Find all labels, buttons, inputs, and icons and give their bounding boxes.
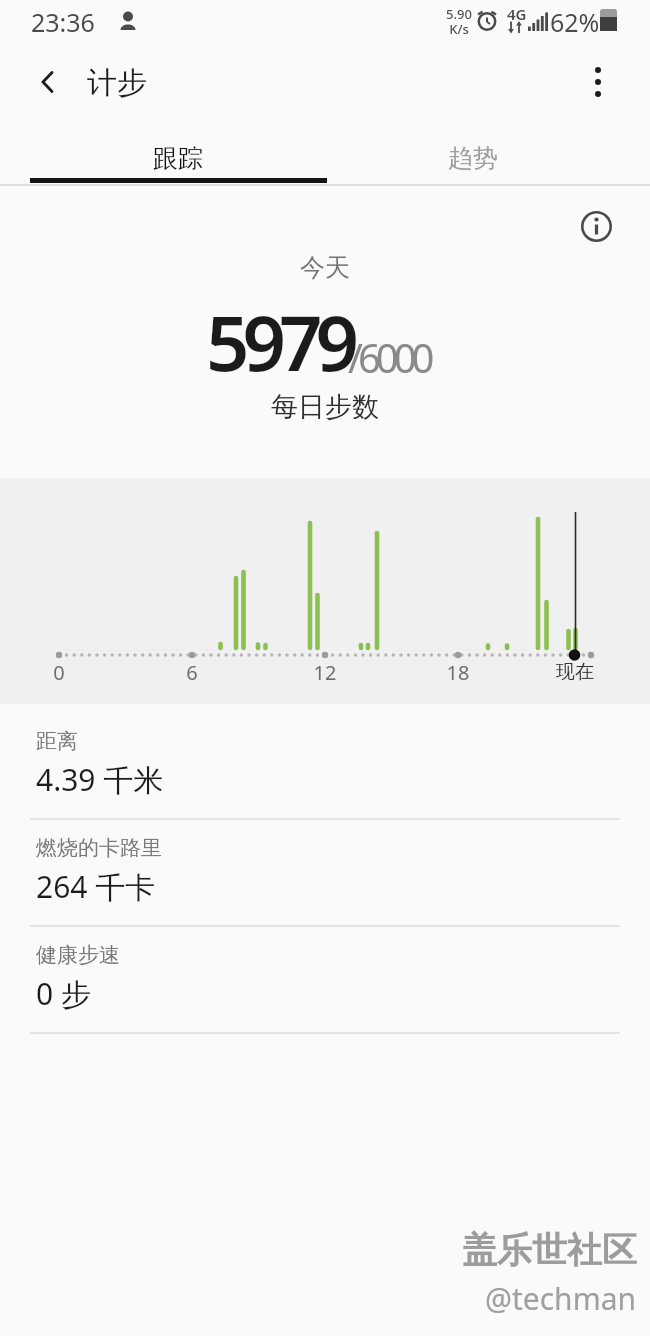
staticText: 264 千卡 bbox=[36, 866, 156, 907]
staticText: 0 bbox=[39, 659, 79, 686]
button[interactable]: 计步 bbox=[87, 64, 147, 102]
button[interactable]: 健康步速 bbox=[0, 926, 650, 1033]
staticText: 健康步速 bbox=[36, 942, 120, 968]
staticText: @techman bbox=[485, 1278, 637, 1319]
staticText: 距离 bbox=[36, 728, 78, 754]
staticText: 4G bbox=[507, 4, 527, 24]
staticText: 4.39 千米 bbox=[36, 759, 164, 800]
button[interactable] bbox=[24, 58, 72, 106]
staticText: 趋势 bbox=[448, 143, 498, 174]
button[interactable] bbox=[574, 58, 622, 106]
staticText: 12 bbox=[305, 659, 345, 686]
staticText: 5979 bbox=[206, 290, 352, 394]
button[interactable]: 跟踪 bbox=[30, 130, 325, 186]
staticText: 23:36 bbox=[31, 5, 95, 39]
staticText: 盖乐世社区 bbox=[462, 1228, 637, 1272]
staticText: 现在 bbox=[545, 660, 605, 684]
staticText: 5.90 K/s bbox=[438, 5, 480, 38]
button[interactable] bbox=[578, 208, 614, 244]
staticText: 跟踪 bbox=[153, 143, 203, 174]
staticText: 18 bbox=[438, 659, 478, 686]
button[interactable]: 趋势 bbox=[325, 130, 620, 186]
staticText: 6 bbox=[172, 659, 212, 686]
staticText: 今天 bbox=[0, 252, 650, 283]
staticText: 每日步数 bbox=[0, 390, 650, 424]
button[interactable]: 燃烧的卡路里 bbox=[0, 819, 650, 926]
staticText: 燃烧的卡路里 bbox=[36, 835, 162, 861]
staticText: 62% bbox=[550, 5, 600, 39]
staticText: /6000 bbox=[348, 330, 430, 384]
button[interactable]: 距离 bbox=[0, 712, 650, 819]
staticText: 0 步 bbox=[36, 973, 91, 1014]
